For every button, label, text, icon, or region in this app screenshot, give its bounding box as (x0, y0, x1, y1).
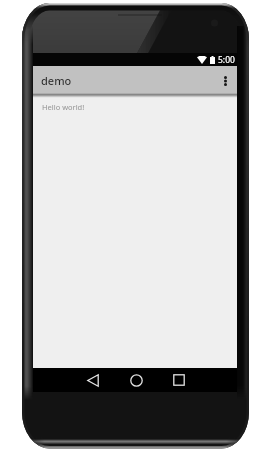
button[interactable]: Recent apps (165, 370, 193, 390)
staticText: demo (41, 73, 72, 88)
button[interactable]: More options (213, 66, 237, 95)
staticText: Hello world! (42, 102, 85, 112)
button[interactable]: Back (79, 370, 107, 390)
staticText: 5:00 (218, 54, 235, 66)
button[interactable]: Home (122, 370, 150, 390)
